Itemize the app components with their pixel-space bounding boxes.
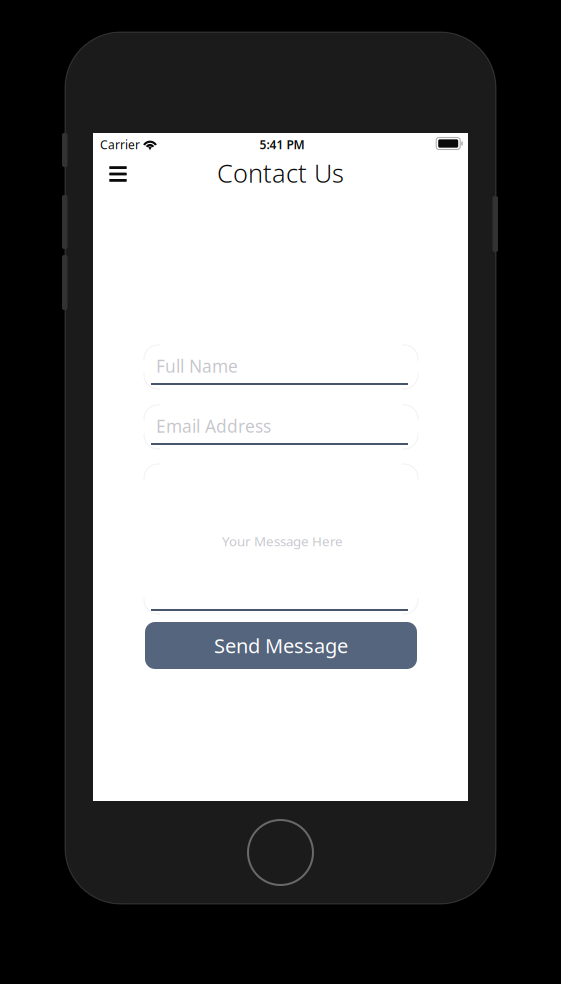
staticText: Full Name: [156, 354, 238, 377]
button[interactable]: Menu: [98, 156, 138, 192]
staticText: Email Address: [156, 414, 271, 437]
staticText: Carrier: [100, 136, 140, 152]
staticText: Your Message Here: [222, 532, 343, 550]
staticText: 5:41 PM: [259, 136, 304, 152]
staticText: Send Message: [214, 632, 348, 659]
button[interactable]: Send Message: [145, 622, 417, 669]
staticText: Contact Us: [217, 156, 344, 190]
